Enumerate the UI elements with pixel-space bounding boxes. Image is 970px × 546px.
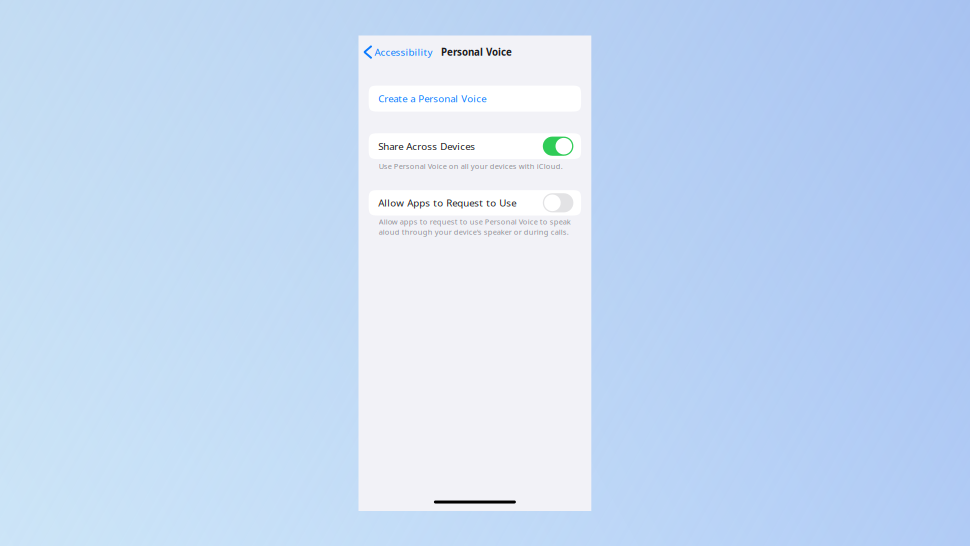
staticText: Allow Apps to Request to Use [378,196,516,209]
button[interactable]: Share Across Devices [369,133,581,159]
staticText: Create a Personal Voice [378,92,486,105]
button[interactable]: Allow Apps to Request to Use [369,190,581,215]
button[interactable]: Accessibility [364,43,432,61]
staticText: Share Across Devices [378,140,475,153]
staticText: Personal Voice [441,45,512,59]
staticText: Accessibility [374,45,432,59]
staticText: Use Personal Voice on all your devices w… [379,161,563,171]
button[interactable]: Create a Personal Voice [369,86,581,112]
staticText: Allow apps to request to use Personal Vo… [379,217,571,237]
